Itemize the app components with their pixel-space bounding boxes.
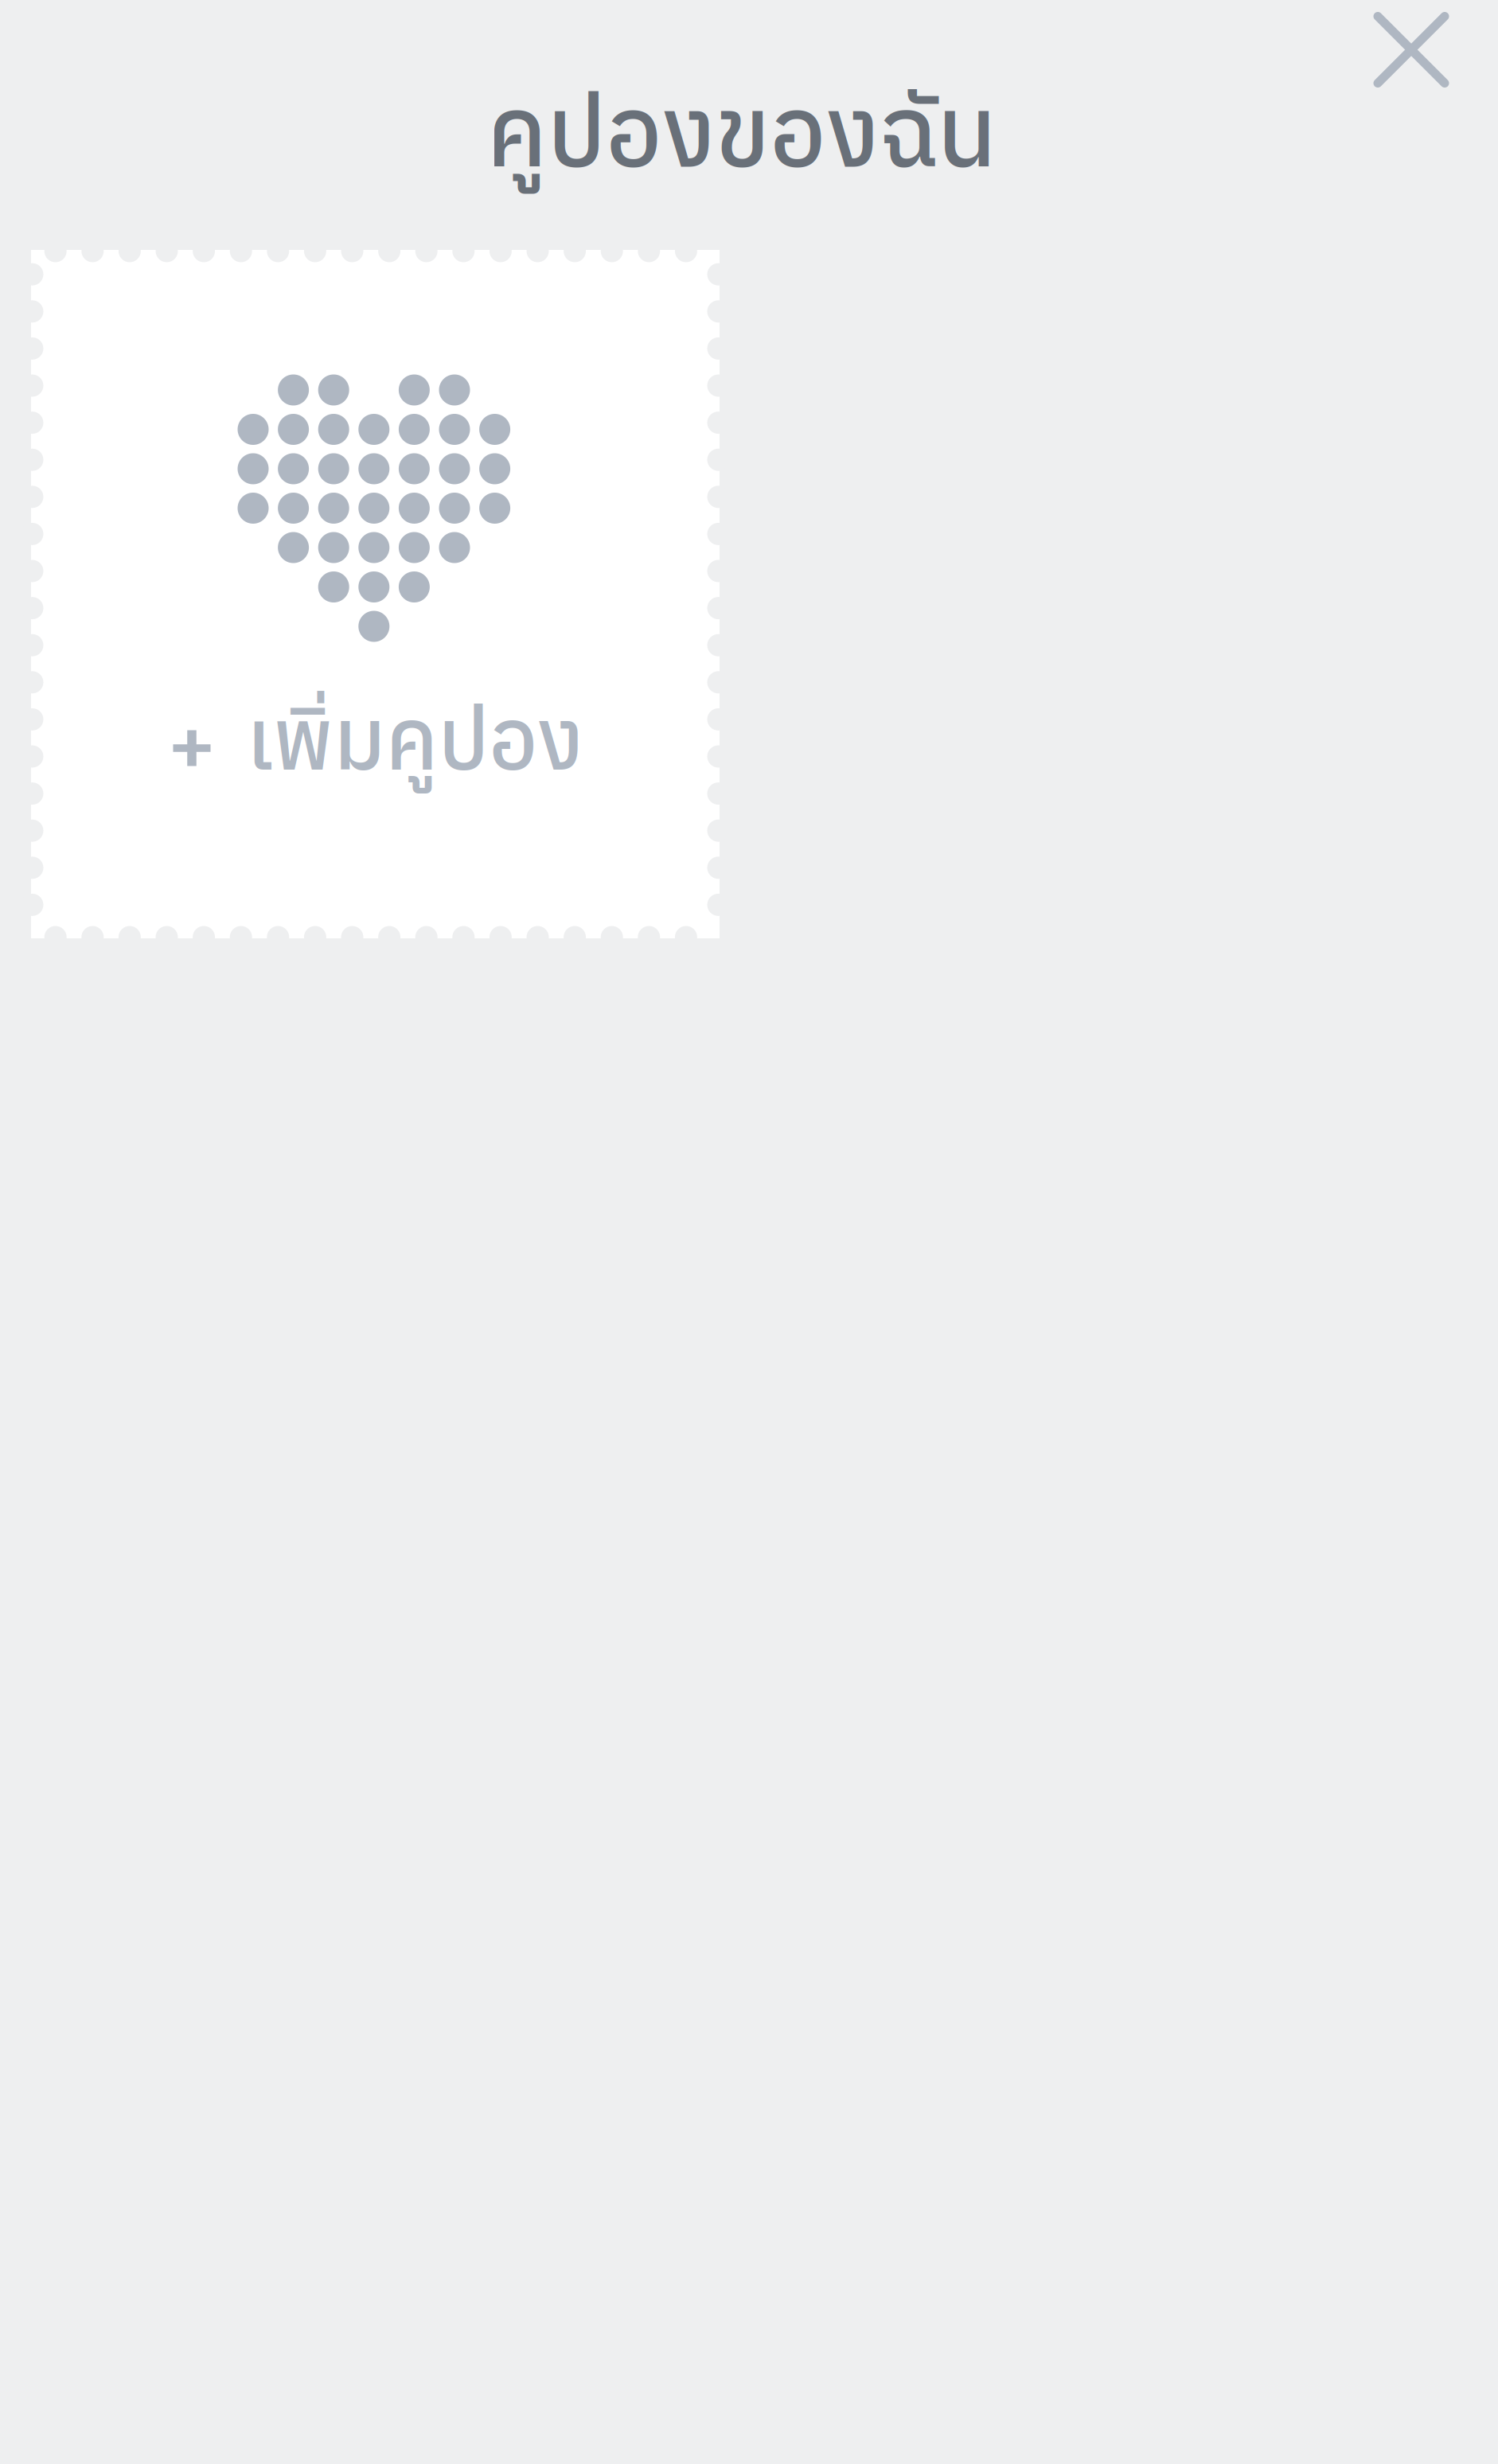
staticText: เพิ่มคูปอง — [247, 684, 583, 793]
button[interactable]: Close — [1344, 12, 1479, 111]
button[interactable]: เพิ่มคูปอง — [31, 250, 720, 938]
staticText: คูปองของฉัน — [487, 68, 997, 193]
